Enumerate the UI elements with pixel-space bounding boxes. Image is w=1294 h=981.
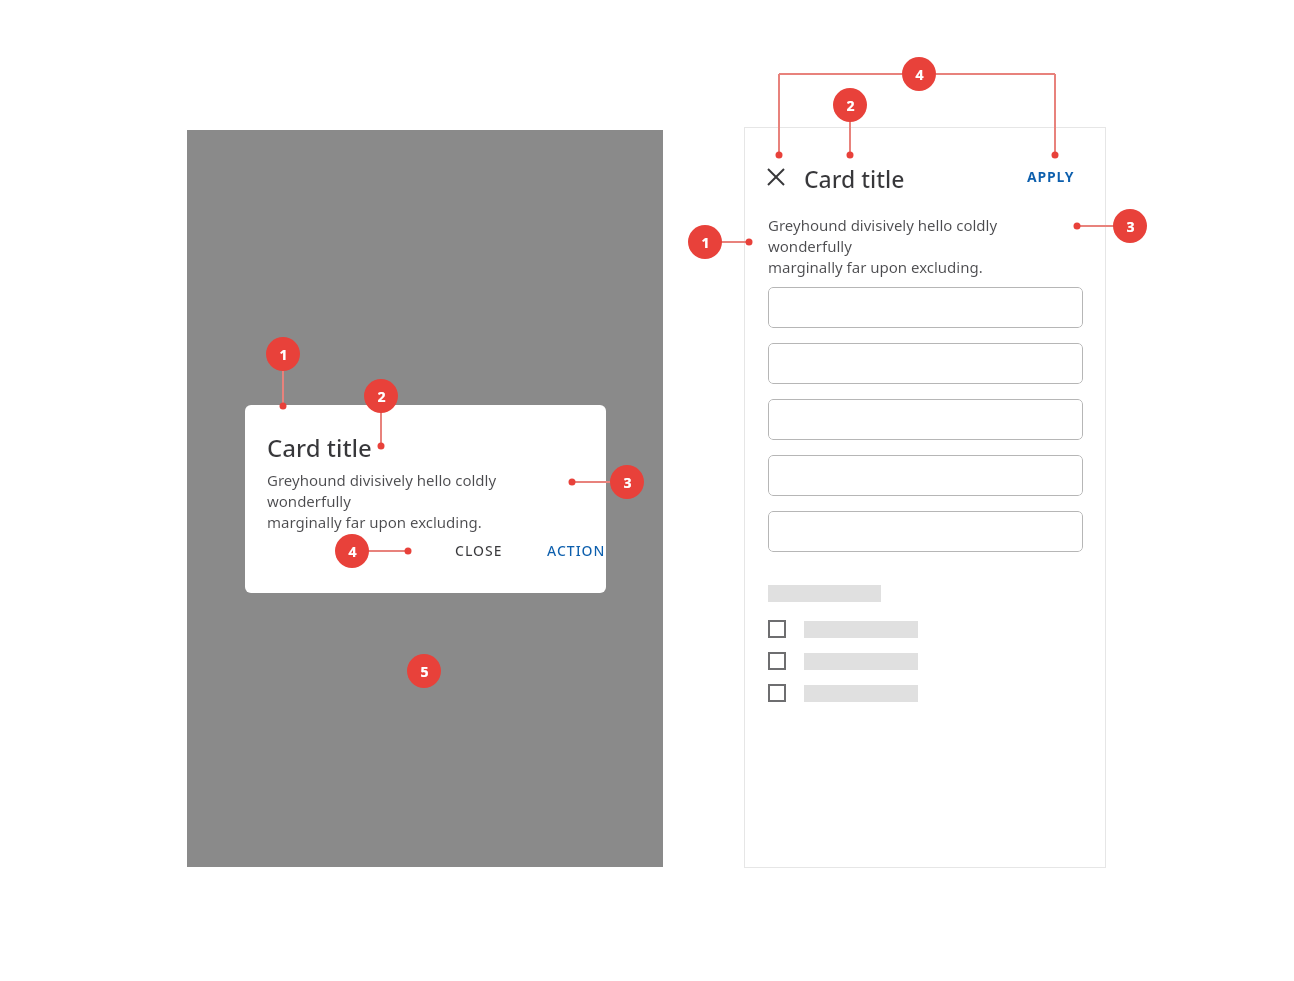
button[interactable]: Text field 3 [768, 399, 1083, 440]
staticText: Card title [804, 163, 905, 194]
staticText: 5 [420, 662, 429, 681]
button[interactable]: Checkbox option 2 [768, 648, 918, 674]
button[interactable]: Checkbox option 3 [768, 680, 918, 706]
staticText: 1 [701, 233, 710, 252]
button[interactable]: Text field 4 [768, 455, 1083, 496]
button[interactable]: Text field 5 [768, 511, 1083, 552]
staticText: 4 [348, 542, 357, 561]
button[interactable]: APPLY [1019, 161, 1083, 192]
staticText: 4 [915, 65, 924, 84]
button[interactable]: Checkbox option 1 [768, 616, 918, 642]
button[interactable]: ACTION [537, 533, 606, 568]
staticText: 2 [377, 387, 386, 406]
button[interactable]: Text field 2 [768, 343, 1083, 384]
staticText: Greyhound divisively hello coldly wonder… [768, 215, 1080, 278]
staticText: CLOSE [455, 541, 503, 560]
staticText: ACTION [547, 541, 606, 560]
staticText: 1 [279, 345, 288, 364]
staticText: 3 [1126, 217, 1135, 236]
button[interactable]: Close [756, 157, 796, 197]
button[interactable]: Text field 1 [768, 287, 1083, 328]
staticText: APPLY [1027, 167, 1075, 186]
staticText: 2 [846, 96, 855, 115]
staticText: Greyhound divisively hello coldly wonder… [267, 470, 577, 533]
staticText: 3 [623, 473, 632, 492]
button[interactable]: CLOSE [445, 533, 513, 568]
staticText: Card title [267, 431, 372, 464]
